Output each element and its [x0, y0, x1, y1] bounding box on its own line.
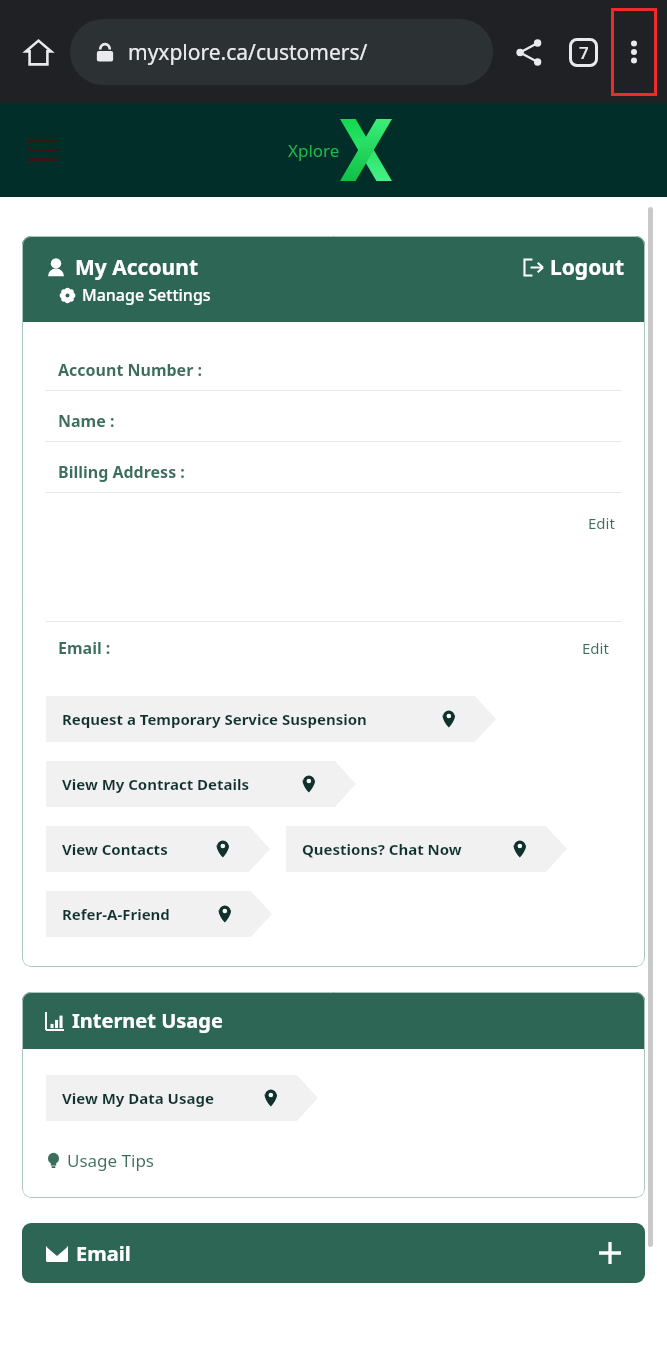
button[interactable]: Manage Settings [60, 284, 211, 306]
button[interactable]: View My Data Usage [46, 1075, 318, 1121]
staticText: My Account [75, 253, 198, 282]
staticText: Logout [550, 253, 625, 282]
button[interactable]: myxplore.ca/customers/ [70, 19, 493, 85]
staticText: myxplore.ca/customers/ [128, 38, 368, 67]
staticText: Edit [582, 638, 609, 658]
button[interactable]: View My Contract Details [46, 761, 356, 807]
staticText: Xplore [288, 139, 340, 162]
staticText: Name : [58, 410, 115, 432]
staticText: Email [76, 1240, 131, 1267]
staticText: Manage Settings [82, 284, 211, 306]
staticText: Billing Address : [58, 461, 185, 483]
button[interactable]: Usage Tips [46, 1149, 155, 1172]
button[interactable]: My Account [46, 253, 198, 282]
button[interactable]: Questions? Chat Now [286, 826, 567, 872]
staticText: Internet Usage [72, 1007, 223, 1034]
button[interactable]: Tabs [559, 28, 607, 76]
staticText: Usage Tips [67, 1149, 155, 1172]
button[interactable]: Refer-A-Friend [46, 891, 272, 937]
button[interactable]: Request a Temporary Service Suspension [46, 696, 496, 742]
staticText: View Contacts [62, 839, 168, 859]
staticText: 7 [579, 41, 589, 64]
button[interactable]: Internet Usage [46, 1007, 223, 1034]
staticText: Refer-A-Friend [62, 904, 170, 924]
button[interactable]: Logout [523, 253, 625, 282]
staticText: View My Data Usage [62, 1088, 214, 1108]
button[interactable]: More options [611, 8, 657, 96]
button[interactable]: Menu [28, 139, 58, 161]
staticText: View My Contract Details [62, 774, 249, 794]
button[interactable]: Share [505, 28, 553, 76]
button[interactable]: View Contacts [46, 826, 270, 872]
staticText: Questions? Chat Now [302, 839, 462, 859]
staticText: Request a Temporary Service Suspension [62, 709, 367, 729]
button[interactable]: Home [14, 28, 62, 76]
button[interactable]: Email [22, 1223, 645, 1283]
button[interactable]: Edit [582, 511, 621, 535]
staticText: Email : [58, 637, 111, 659]
button[interactable]: Edit [582, 638, 609, 658]
staticText: Account Number : [58, 359, 202, 381]
